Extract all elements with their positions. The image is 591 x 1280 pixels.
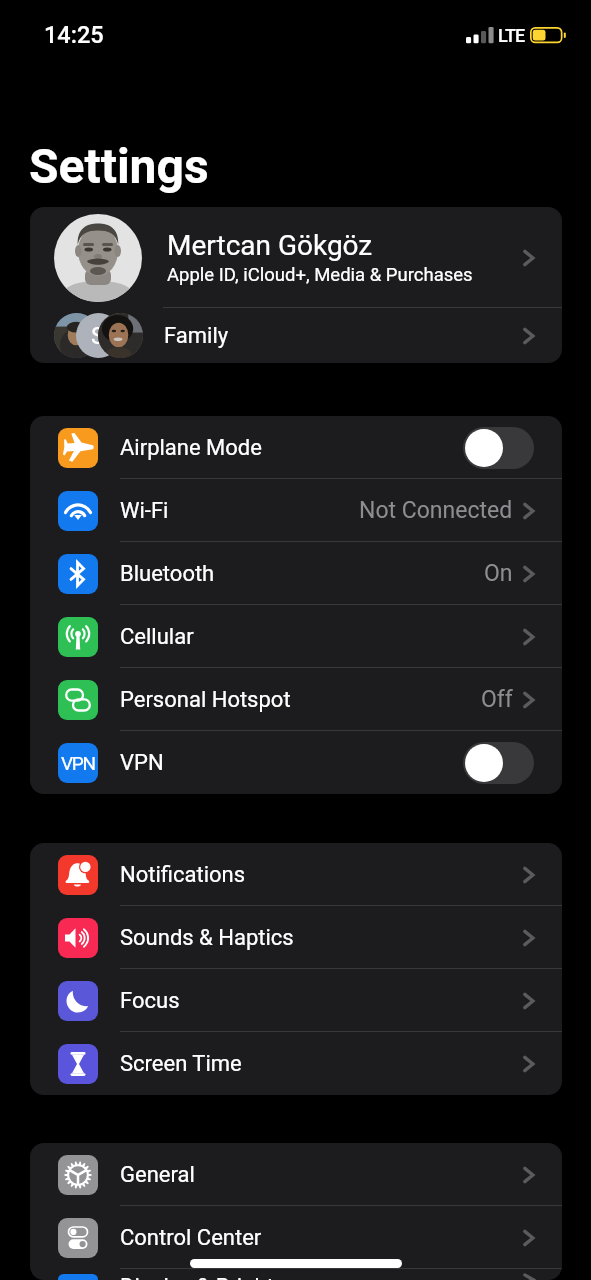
staticText: Wi-Fi — [120, 498, 169, 524]
button[interactable]: Notifications — [30, 843, 562, 906]
button[interactable]: Focus — [30, 969, 562, 1032]
button[interactable]: Wi-Fi — [30, 479, 562, 542]
staticText: LTE — [498, 25, 525, 46]
staticText: Personal Hotspot — [120, 687, 291, 713]
staticText: Not Connected — [359, 497, 513, 524]
button[interactable]: Control Center — [30, 1206, 562, 1269]
button[interactable]: Sounds & Haptics — [30, 906, 562, 969]
staticText: VPN — [120, 750, 164, 776]
staticText: Apple ID, iCloud+, Media & Purchases — [167, 264, 473, 286]
staticText: Cellular — [120, 624, 194, 650]
staticText: Display & Brightness — [120, 1274, 321, 1280]
button[interactable]: Toggle VPN — [463, 742, 534, 784]
staticText: Settings — [29, 138, 209, 194]
button[interactable]: Toggle Airplane Mode — [463, 427, 534, 469]
staticText: On — [484, 560, 513, 587]
button[interactable]: Mertcan Gökgöz — [30, 207, 562, 308]
button[interactable]: Personal Hotspot — [30, 668, 562, 731]
staticText: Airplane Mode — [120, 435, 262, 461]
staticText: Family — [164, 323, 229, 349]
button[interactable]: Bluetooth — [30, 542, 562, 605]
staticText: Notifications — [120, 862, 246, 888]
staticText: Control Center — [120, 1225, 262, 1251]
button[interactable]: General — [30, 1143, 562, 1206]
staticText: General — [120, 1162, 195, 1188]
staticText: Screen Time — [120, 1051, 242, 1077]
staticText: VPN — [61, 752, 95, 774]
staticText: Mertcan Gökgöz — [167, 229, 373, 262]
staticText: 14:25 — [44, 21, 104, 49]
button[interactable]: S — [30, 308, 562, 363]
button[interactable]: Screen Time — [30, 1032, 562, 1095]
button[interactable]: Cellular — [30, 605, 562, 668]
button[interactable]: Display & Brightness — [30, 1269, 562, 1280]
staticText: Bluetooth — [120, 561, 215, 587]
button[interactable]: Airplane Mode — [30, 416, 562, 479]
staticText: S — [91, 322, 106, 350]
button[interactable]: VPN — [30, 731, 562, 794]
staticText: Focus — [120, 988, 180, 1014]
staticText: Sounds & Haptics — [120, 925, 294, 951]
staticText: Off — [481, 686, 513, 713]
